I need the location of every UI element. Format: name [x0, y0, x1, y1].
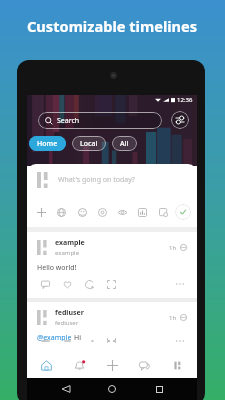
staticText: example [55, 238, 85, 248]
staticText: Hi [74, 333, 81, 341]
button[interactable]: Recent apps [151, 381, 167, 397]
staticText: 1h [169, 244, 177, 252]
button[interactable]: Profile [165, 353, 189, 378]
button[interactable]: example [27, 232, 197, 298]
staticText: Search [57, 116, 80, 126]
staticText: fediuser [55, 319, 79, 327]
staticText: fediuser [55, 308, 84, 318]
button[interactable]: Mention [94, 204, 110, 220]
staticText: Local [80, 139, 98, 149]
button[interactable]: Home [34, 353, 58, 378]
button[interactable]: Share [103, 276, 119, 292]
button[interactable]: Favourite [59, 276, 75, 292]
button[interactable]: Conversations [132, 353, 156, 378]
staticText: example [55, 249, 80, 257]
button[interactable]: Back [58, 381, 74, 397]
staticText: Customizable timelines [27, 16, 198, 36]
button[interactable]: Language [53, 204, 69, 220]
button[interactable]: Compose [100, 353, 124, 378]
staticText: Hello world! [37, 263, 77, 273]
button[interactable]: Media [155, 204, 171, 220]
button[interactable]: Filters [171, 111, 189, 129]
staticText: 1h [169, 314, 177, 322]
button[interactable]: Search [38, 112, 162, 129]
button[interactable]: fediuser [27, 302, 197, 341]
button[interactable]: Poll [134, 204, 150, 220]
button[interactable]: More options [173, 277, 187, 291]
button[interactable]: Home [104, 381, 120, 397]
button[interactable]: Home [29, 136, 66, 151]
button[interactable]: All [112, 136, 137, 151]
button[interactable]: Emoji [74, 204, 90, 220]
staticText: 12:36 [177, 96, 193, 104]
button[interactable]: Boost [81, 276, 97, 292]
staticText: What's going on today? [58, 175, 135, 185]
button[interactable]: Reply [37, 276, 53, 292]
staticText: @example [37, 333, 72, 341]
button[interactable]: Notifications [67, 353, 91, 378]
staticText: Home [37, 139, 58, 149]
button[interactable]: Post [175, 204, 191, 220]
button[interactable]: Add content [33, 204, 49, 220]
button[interactable]: Content warning [114, 204, 130, 220]
staticText: All [120, 139, 129, 149]
button[interactable]: Local [72, 136, 106, 151]
